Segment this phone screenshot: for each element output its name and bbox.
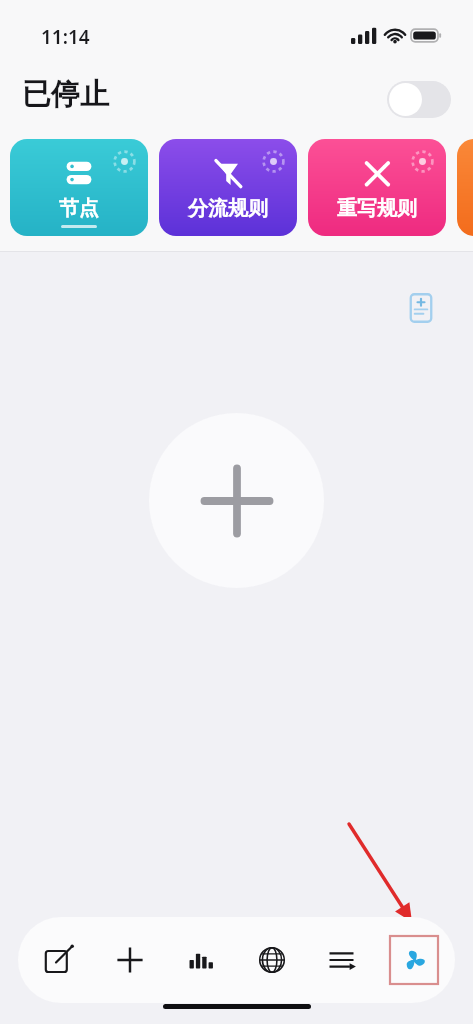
button[interactable]: New profile: [398, 285, 444, 331]
staticText: 已停止: [22, 76, 109, 113]
button[interactable]: 节点: [10, 139, 148, 236]
button[interactable]: Tools: [390, 936, 438, 984]
button[interactable]: Network: [248, 936, 296, 984]
staticText: 11:14: [41, 24, 90, 50]
staticText: 分流规则: [188, 196, 268, 221]
button[interactable]: Enable proxy: [387, 81, 451, 118]
staticText: 重写规则: [337, 196, 417, 221]
button[interactable]: 分流规则: [159, 139, 297, 236]
button[interactable]: Add configuration: [149, 413, 324, 588]
staticText: 节点: [59, 196, 99, 221]
button[interactable]: Compose: [35, 936, 83, 984]
button[interactable]: Add: [106, 936, 154, 984]
button[interactable]: Statistics: [177, 936, 225, 984]
button[interactable]: More modules: [457, 139, 473, 236]
button[interactable]: 重写规则: [308, 139, 446, 236]
button[interactable]: Logs: [319, 936, 367, 984]
